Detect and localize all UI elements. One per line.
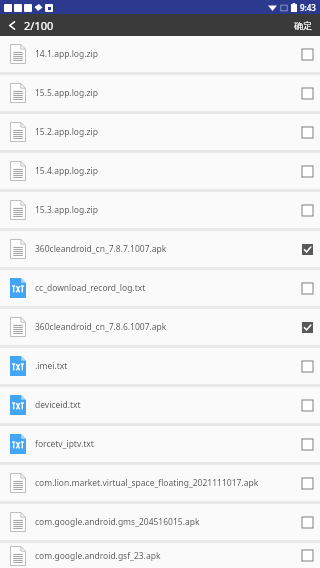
button[interactable]: Not selected — [302, 127, 313, 138]
staticText: 9:43 — [300, 2, 316, 13]
button[interactable]: Back — [0, 20, 22, 31]
button[interactable]: Selected — [302, 244, 313, 255]
button[interactable]: Not selected — [302, 550, 313, 561]
button[interactable]: 15.3.app.log.zip — [0, 192, 320, 228]
button[interactable]: 15.2.app.log.zip — [0, 114, 320, 150]
button[interactable]: 15.4.app.log.zip — [0, 153, 320, 189]
button[interactable]: 15.5.app.log.zip — [0, 75, 320, 111]
button[interactable]: Not selected — [302, 439, 313, 450]
button[interactable]: 14.1.app.log.zip — [0, 36, 320, 72]
button[interactable]: com.google.android.gms_204516015.apk — [0, 504, 320, 540]
button[interactable]: 360cleandroid_cn_7.8.6.1007.apk — [0, 309, 320, 345]
button[interactable]: Not selected — [302, 283, 313, 294]
button[interactable]: com.lion.market.virtual_space_floating_2… — [0, 465, 320, 501]
staticText: 14.1.app.log.zip — [35, 48, 296, 60]
staticText: 2/100 — [24, 18, 54, 33]
staticText: 15.4.app.log.zip — [35, 165, 296, 177]
button[interactable]: Not selected — [302, 49, 313, 60]
button[interactable]: Not selected — [302, 400, 313, 411]
staticText: cc_download_record_log.txt — [35, 282, 296, 294]
button[interactable]: 360cleandroid_cn_7.8.7.1007.apk — [0, 231, 320, 267]
button[interactable]: 确定 — [286, 20, 320, 31]
button[interactable]: forcetv_iptv.txt — [0, 426, 320, 462]
staticText: 360cleandroid_cn_7.8.7.1007.apk — [35, 243, 296, 255]
staticText: .imei.txt — [35, 360, 296, 372]
staticText: com.google.android.gsf_23.apk — [35, 550, 296, 562]
button[interactable]: Not selected — [302, 517, 313, 528]
staticText: com.lion.market.virtual_space_floating_2… — [35, 477, 296, 489]
button[interactable]: com.google.android.gsf_23.apk — [0, 543, 320, 568]
staticText: deviceid.txt — [35, 399, 296, 411]
button[interactable]: Not selected — [302, 166, 313, 177]
staticText: 360cleandroid_cn_7.8.6.1007.apk — [35, 321, 296, 333]
button[interactable]: Not selected — [302, 205, 313, 216]
staticText: 15.5.app.log.zip — [35, 87, 296, 99]
button[interactable]: cc_download_record_log.txt — [0, 270, 320, 306]
button[interactable]: Not selected — [302, 88, 313, 99]
button[interactable]: deviceid.txt — [0, 387, 320, 423]
button[interactable]: Not selected — [302, 361, 313, 372]
staticText: forcetv_iptv.txt — [35, 438, 296, 450]
button[interactable]: Selected — [302, 322, 313, 333]
button[interactable]: .imei.txt — [0, 348, 320, 384]
staticText: 15.2.app.log.zip — [35, 126, 296, 138]
staticText: 15.3.app.log.zip — [35, 204, 296, 216]
button[interactable]: Not selected — [302, 478, 313, 489]
staticText: 确定 — [294, 20, 312, 31]
staticText: com.google.android.gms_204516015.apk — [35, 516, 296, 528]
